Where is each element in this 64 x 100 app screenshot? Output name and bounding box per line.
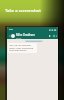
button[interactable]: Call	[52, 34, 55, 37]
staticText: end-to-end encrypted	[26, 40, 42, 42]
button[interactable]: Back	[8, 34, 11, 37]
staticText: 9:41	[9, 28, 14, 31]
staticText: Mike Davidson	[16, 33, 35, 37]
staticText: Take a screenshot	[5, 8, 41, 14]
button[interactable]: Video call	[48, 34, 51, 37]
staticText: online	[16, 37, 22, 39]
button[interactable]: More options	[55, 35, 57, 37]
button[interactable]: Hey! Are you free later today? I was thi…	[9, 44, 36, 52]
button[interactable]: end-to-end encrypted	[26, 40, 42, 42]
staticText: Hey! Are you free later today? I was thi…	[9, 44, 36, 52]
